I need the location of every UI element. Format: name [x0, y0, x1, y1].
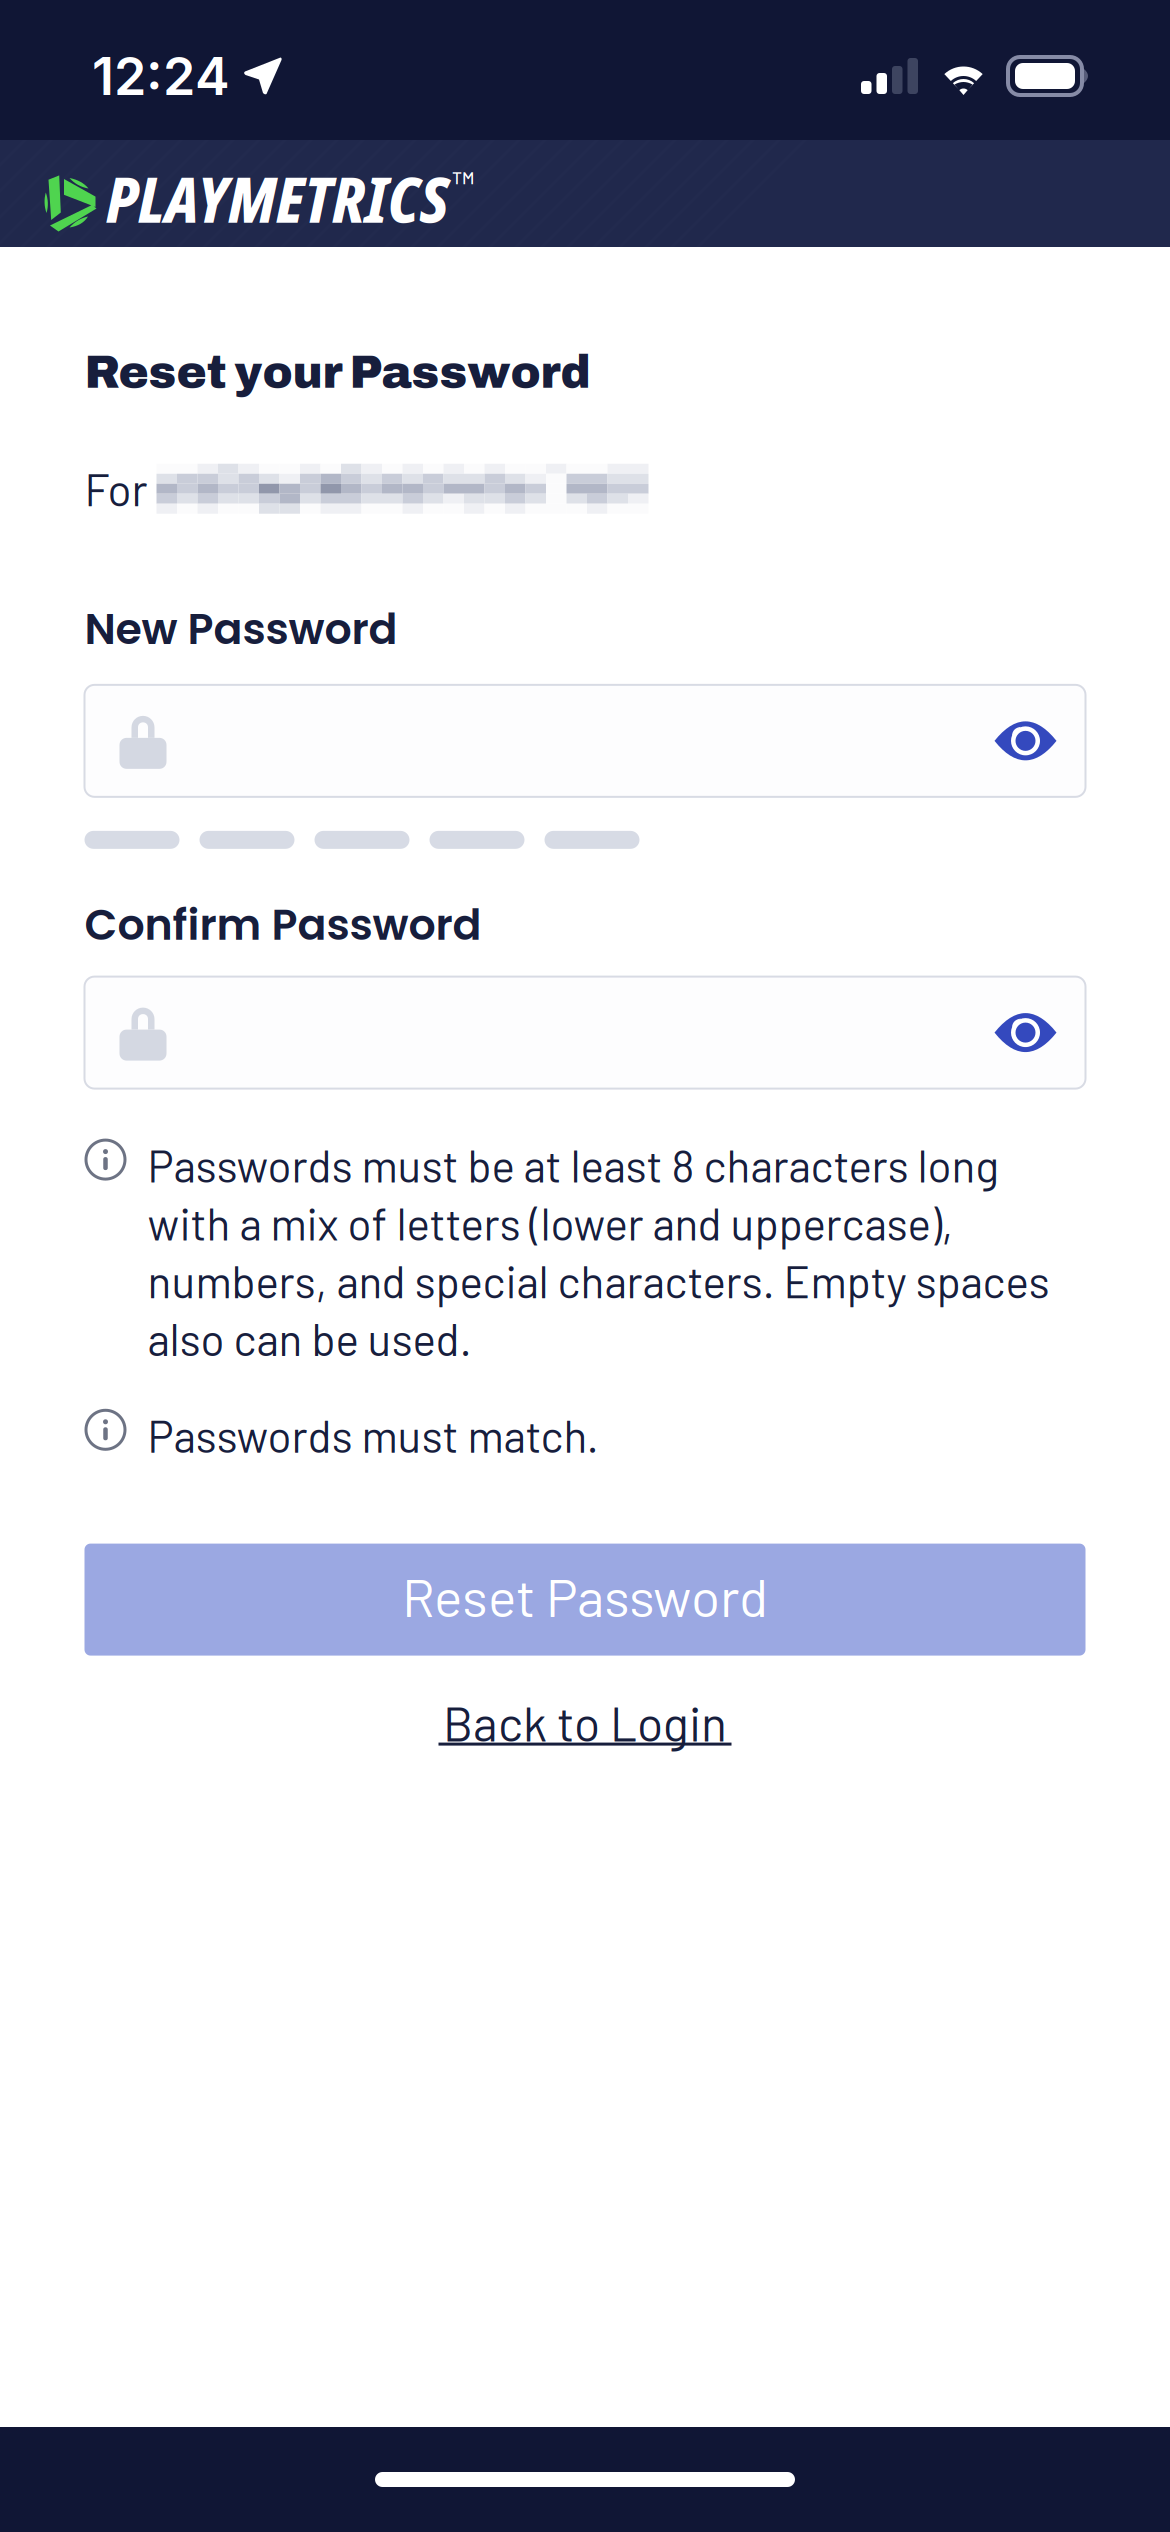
staticText: Reset your Password: [84, 348, 590, 397]
button[interactable]: Back to Login: [84, 1692, 1085, 1756]
staticText: For: [84, 462, 156, 515]
staticText: Back to Login: [443, 1694, 727, 1751]
button[interactable]: Show password: [965, 977, 1085, 1089]
staticText: New Password: [84, 599, 397, 659]
staticText: TM: [452, 167, 474, 188]
staticText: Passwords must match.: [147, 1409, 598, 1462]
button[interactable]: Show password: [965, 685, 1085, 797]
staticText: PLAYMETRICS: [106, 156, 449, 241]
staticText: Passwords must be at least 8 characters …: [147, 1139, 1049, 1365]
button[interactable]: Reset Password: [84, 1544, 1085, 1656]
staticText: Confirm Password: [84, 895, 481, 955]
staticText: 12:24: [92, 44, 230, 107]
staticText: Reset Password: [402, 1564, 768, 1628]
